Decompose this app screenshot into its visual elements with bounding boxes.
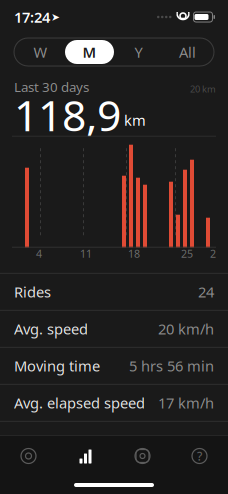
staticText: Y xyxy=(134,42,142,62)
staticText: 17 km/h xyxy=(158,393,214,413)
staticText: ➤ xyxy=(51,11,60,23)
button[interactable]: Help xyxy=(171,436,228,476)
staticText: Avg. elapsed speed xyxy=(14,393,145,413)
button[interactable]: Y xyxy=(114,40,163,64)
staticText: 5 hrs 56 min xyxy=(129,356,214,376)
staticText: 20 km xyxy=(190,83,216,95)
staticText: km xyxy=(124,110,146,130)
staticText: 24 xyxy=(198,282,214,302)
button[interactable]: All xyxy=(163,40,212,64)
button[interactable]: Settings xyxy=(114,436,171,476)
staticText: Rides xyxy=(14,282,51,302)
staticText: 25 xyxy=(181,247,193,261)
staticText: 20 km/h xyxy=(158,319,214,339)
staticText: Moving time xyxy=(14,356,100,376)
staticText: 2 xyxy=(210,247,216,261)
staticText: 4 xyxy=(36,247,42,261)
staticText: 11 xyxy=(80,247,92,261)
staticText: Last 30 days xyxy=(14,78,89,96)
staticText: 17:24 xyxy=(14,7,50,27)
staticText: W xyxy=(33,42,47,62)
staticText: All xyxy=(179,42,196,62)
button[interactable]: M xyxy=(65,40,114,64)
staticText: 18 xyxy=(128,247,140,261)
staticText: 118,9 xyxy=(14,86,121,143)
button[interactable]: Activity map xyxy=(0,436,57,476)
staticText: M xyxy=(82,42,96,62)
staticText: Avg. speed xyxy=(14,319,88,339)
button[interactable]: Statistics xyxy=(57,436,114,476)
staticText: ? xyxy=(197,448,202,464)
button[interactable]: W xyxy=(16,40,65,64)
